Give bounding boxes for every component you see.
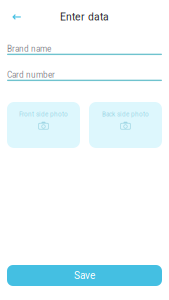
staticText: Card number [7,70,55,80]
button[interactable]: Front side photo [7,102,80,148]
button[interactable]: Back side photo [89,102,162,148]
staticText: Front side photo [19,110,68,118]
button[interactable]: Save [7,265,162,286]
button[interactable]: Back [0,7,21,27]
staticText: Back side photo [102,110,149,118]
staticText: Enter data [60,11,109,23]
staticText: Save [74,270,95,281]
staticText: Brand name [7,44,51,54]
